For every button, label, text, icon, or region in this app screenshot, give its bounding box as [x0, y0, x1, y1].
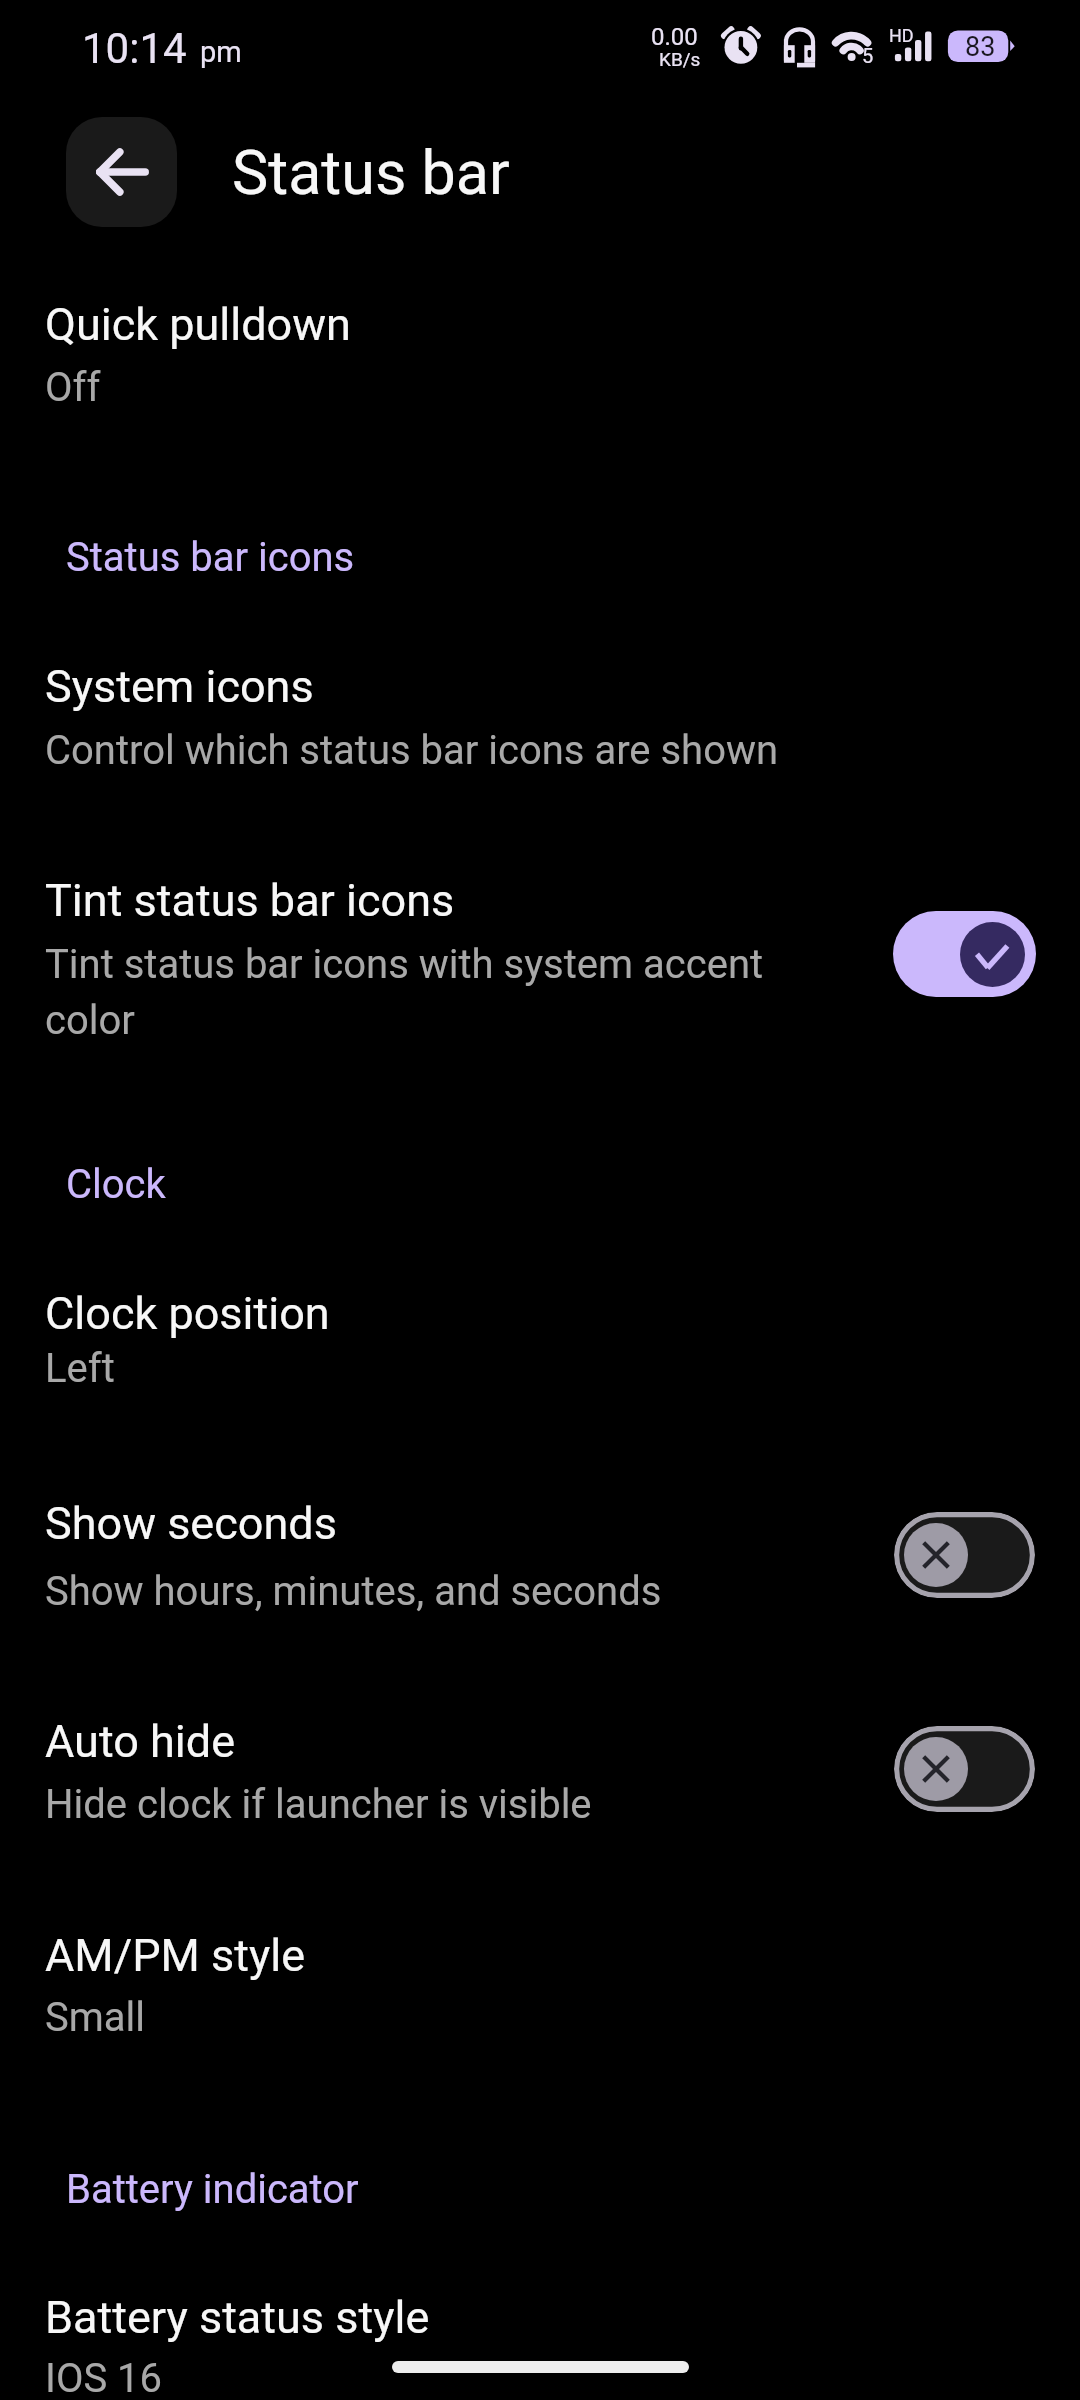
staticText: 0.00	[651, 23, 698, 51]
staticText: pm	[200, 35, 242, 69]
staticText: Status bar	[232, 137, 510, 208]
staticText: 83	[965, 31, 996, 63]
staticText: Left	[45, 1345, 115, 1392]
staticText: AM/PM style	[45, 1929, 306, 1982]
staticText: Battery indicator	[66, 2166, 359, 2213]
staticText: Clock	[66, 1161, 166, 1208]
button[interactable]: Tint status bar icons, Tint status bar i…	[0, 844, 1080, 1056]
staticText: Control which status bar icons are shown	[45, 727, 779, 774]
staticText: IOS 16	[45, 2355, 163, 2400]
button[interactable]: Back	[66, 117, 177, 227]
staticText: Tint status bar icons with system accent…	[45, 941, 805, 1043]
staticText: Hide clock if launcher is visible	[45, 1781, 592, 1828]
button[interactable]: Clock position, Left	[0, 1258, 1080, 1428]
staticText: Battery status style	[45, 2291, 430, 2344]
staticText: KB/s	[659, 48, 701, 70]
staticText: 5	[862, 44, 874, 67]
button[interactable]: Quick pulldown, Off	[0, 268, 1080, 438]
button[interactable]: Tint status bar icons, on	[893, 911, 1036, 997]
staticText: Show hours, minutes, and seconds	[45, 1568, 662, 1615]
button[interactable]: Show seconds, Show hours, minutes, and s…	[0, 1468, 1080, 1638]
button[interactable]: Battery status style, IOS 16	[0, 2262, 1080, 2400]
staticText: Clock position	[45, 1287, 330, 1340]
button[interactable]: Auto hide, off	[894, 1726, 1035, 1812]
staticText: Status bar icons	[66, 534, 355, 581]
button[interactable]: Show seconds, off	[894, 1512, 1035, 1598]
button[interactable]: Auto hide, Hide clock if launcher is vis…	[0, 1686, 1080, 1856]
staticText: HD	[889, 25, 914, 46]
staticText: Quick pulldown	[45, 298, 351, 351]
staticText: Off	[45, 364, 101, 411]
staticText: Small	[45, 1994, 146, 2041]
staticText: Auto hide	[45, 1715, 235, 1768]
button[interactable]: System icons, Control which status bar i…	[0, 630, 1080, 800]
staticText: Show seconds	[45, 1497, 337, 1550]
staticText: System icons	[45, 660, 314, 713]
button[interactable]: AM/PM style, Small	[0, 1900, 1080, 2070]
staticText: 10:14	[82, 24, 187, 73]
staticText: Tint status bar icons	[45, 874, 455, 927]
